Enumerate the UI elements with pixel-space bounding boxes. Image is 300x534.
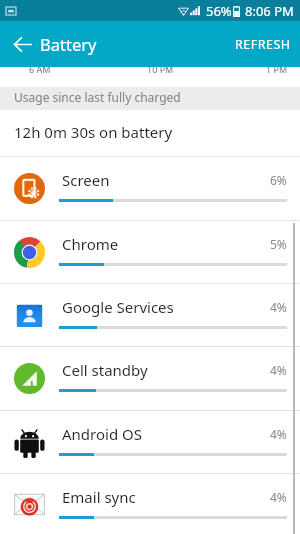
staticText: Battery bbox=[40, 33, 97, 55]
staticText: Email sync bbox=[62, 487, 136, 507]
staticText: Cell standby bbox=[62, 360, 148, 380]
staticText: REFRESH bbox=[235, 36, 291, 53]
button[interactable]: Chrome bbox=[0, 221, 300, 283]
button[interactable]: 12h 0m 30s on battery bbox=[0, 110, 300, 156]
button[interactable]: Google Services bbox=[0, 284, 300, 346]
staticText: 4% bbox=[270, 426, 287, 442]
staticText: 1 PM bbox=[266, 63, 288, 75]
staticText: 4% bbox=[270, 299, 287, 315]
staticText: 6% bbox=[270, 172, 287, 188]
staticText: 8:06 PM bbox=[245, 2, 294, 20]
staticText: Screen bbox=[62, 170, 110, 190]
button[interactable]: Cell standby bbox=[0, 347, 300, 410]
staticText: 6 AM bbox=[29, 63, 51, 75]
staticText: 12h 0m 30s on battery bbox=[14, 122, 173, 142]
button[interactable]: Navigate up bbox=[5, 27, 39, 61]
staticText: Android OS bbox=[62, 424, 142, 444]
staticText: 4% bbox=[270, 489, 287, 505]
staticText: 10 PM bbox=[147, 63, 174, 75]
staticText: 56% bbox=[206, 2, 232, 20]
staticText: Google Services bbox=[62, 297, 174, 317]
button[interactable]: Android OS bbox=[0, 411, 300, 473]
staticText: Chrome bbox=[62, 234, 119, 254]
staticText: 4% bbox=[270, 362, 287, 378]
button[interactable]: Email sync bbox=[0, 474, 300, 534]
button[interactable]: REFRESH bbox=[223, 21, 300, 67]
button[interactable]: Screen bbox=[0, 157, 300, 220]
staticText: Usage since last fully charged bbox=[14, 89, 181, 105]
staticText: 5% bbox=[270, 236, 287, 252]
